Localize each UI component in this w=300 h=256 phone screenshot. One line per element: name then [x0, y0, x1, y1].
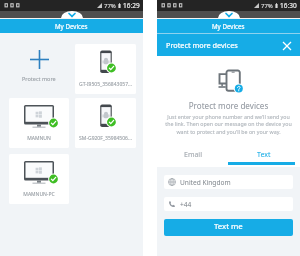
button[interactable]: SM-G920F_35984506…	[75, 98, 136, 148]
button[interactable]: Protect more devices	[157, 34, 300, 56]
staticText: Email	[184, 150, 202, 160]
button[interactable]: My Devices	[157, 19, 300, 33]
staticText: United Kingdom	[180, 178, 231, 187]
staticText: Protect more devices	[157, 100, 300, 111]
button[interactable]: MAMNUN	[9, 98, 69, 148]
staticText: Protect more devices	[166, 40, 238, 50]
button[interactable]: +44	[164, 197, 293, 211]
staticText: Text	[257, 150, 271, 160]
staticText: 16:29	[123, 1, 140, 10]
button[interactable]: Protect more	[9, 44, 69, 94]
staticText: MAMNUN	[27, 135, 51, 142]
button[interactable]: My Devices	[0, 19, 143, 33]
staticText: GT-I9505_356843057…	[79, 81, 132, 88]
staticText: My Devices	[55, 22, 88, 30]
staticText: 77%	[261, 2, 273, 10]
staticText: Protect more	[22, 75, 56, 82]
staticText: My Devices	[212, 22, 245, 30]
button[interactable]: United Kingdom	[164, 175, 293, 189]
staticText: SM-G920F_35984506…	[79, 135, 132, 142]
staticText: 77%	[104, 2, 116, 10]
button[interactable]: MAMNUN-PC	[9, 154, 69, 204]
staticText: 16:30	[280, 1, 297, 10]
staticText: Text me	[214, 221, 243, 232]
staticText: MAMNUN-PC	[23, 191, 55, 198]
button[interactable]: Email	[157, 146, 228, 167]
button[interactable]: Close	[276, 35, 297, 56]
button[interactable]: Text	[228, 146, 300, 167]
button[interactable]: Text me	[164, 219, 293, 236]
staticText: +44	[180, 200, 192, 209]
staticText: Just enter your phone number and we'll s…	[165, 113, 292, 136]
button[interactable]: GT-I9505_356843057…	[75, 44, 136, 94]
